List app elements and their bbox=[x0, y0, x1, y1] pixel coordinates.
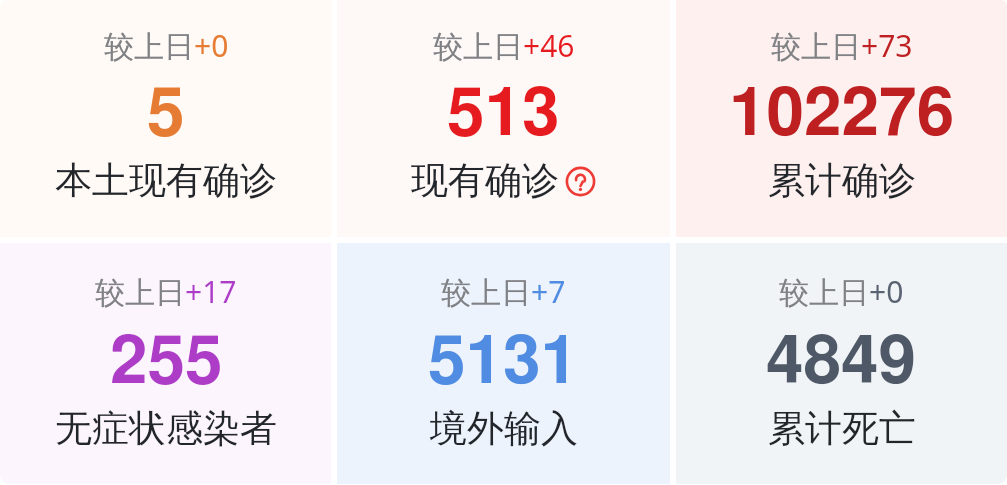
button[interactable]: 较上日+46 bbox=[337, 0, 670, 237]
staticText: 无症状感染者 bbox=[55, 405, 277, 452]
button[interactable]: 较上日+73 bbox=[676, 0, 1007, 237]
staticText: 本土现有确诊 bbox=[55, 157, 277, 204]
staticText: 较上日+0 bbox=[779, 271, 904, 312]
staticText: 较上日+7 bbox=[441, 271, 566, 312]
button[interactable]: 较上日+17 bbox=[0, 243, 331, 484]
staticText: 513 bbox=[447, 81, 560, 149]
staticText: 境外输入 bbox=[430, 405, 578, 452]
staticText: 4849 bbox=[766, 329, 917, 397]
staticText: 5 bbox=[147, 81, 185, 149]
staticText: 累计确诊 bbox=[768, 157, 916, 204]
staticText: 255 bbox=[110, 329, 223, 397]
button[interactable]: 较上日+7 bbox=[337, 243, 670, 484]
staticText: 较上日+73 bbox=[771, 25, 913, 66]
button[interactable]: 较上日+0 bbox=[676, 243, 1007, 484]
staticText: 累计死亡 bbox=[768, 405, 916, 452]
staticText: 较上日+17 bbox=[95, 271, 237, 312]
staticText: 5131 bbox=[428, 329, 579, 397]
staticText: 102276 bbox=[729, 81, 955, 149]
staticText: 较上日+46 bbox=[433, 25, 575, 66]
staticText: 现有确诊 bbox=[411, 157, 559, 204]
button[interactable]: 现有确诊说明 bbox=[565, 166, 596, 197]
staticText: 较上日+0 bbox=[104, 25, 229, 66]
button[interactable]: 较上日+0 bbox=[0, 0, 331, 237]
